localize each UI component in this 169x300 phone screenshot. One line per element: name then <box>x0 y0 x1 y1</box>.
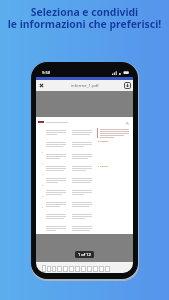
button[interactable] <box>81 266 86 272</box>
button[interactable] <box>63 266 68 272</box>
button[interactable] <box>47 266 51 272</box>
button[interactable] <box>75 266 80 272</box>
staticText: Seleziona e condividi le informazioni ch… <box>0 5 169 31</box>
button[interactable] <box>87 266 92 272</box>
button[interactable]: 1 of 12 <box>75 251 94 258</box>
button[interactable]: Download <box>123 81 132 90</box>
button[interactable]: Close <box>37 81 46 90</box>
button[interactable] <box>99 266 104 272</box>
button[interactable] <box>42 265 46 272</box>
staticText: informe_1.pdf <box>71 83 99 89</box>
staticText: 1 of 12 <box>78 252 91 257</box>
button[interactable] <box>57 266 62 272</box>
staticText: 9:58 <box>42 70 50 75</box>
button[interactable] <box>105 266 110 272</box>
button[interactable] <box>52 266 56 272</box>
button[interactable] <box>93 266 98 272</box>
button[interactable] <box>69 266 74 272</box>
